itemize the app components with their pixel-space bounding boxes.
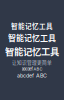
staticText: 让知识管理更简单 — [12, 59, 52, 66]
staticText: abcdef ABC — [17, 72, 47, 79]
staticText: 智能记忆工具 — [8, 32, 56, 43]
staticText: 智能记忆工具 — [5, 44, 59, 58]
staticText: 智能记忆工具 — [11, 21, 53, 31]
staticText: abcdef ABC — [21, 67, 42, 71]
